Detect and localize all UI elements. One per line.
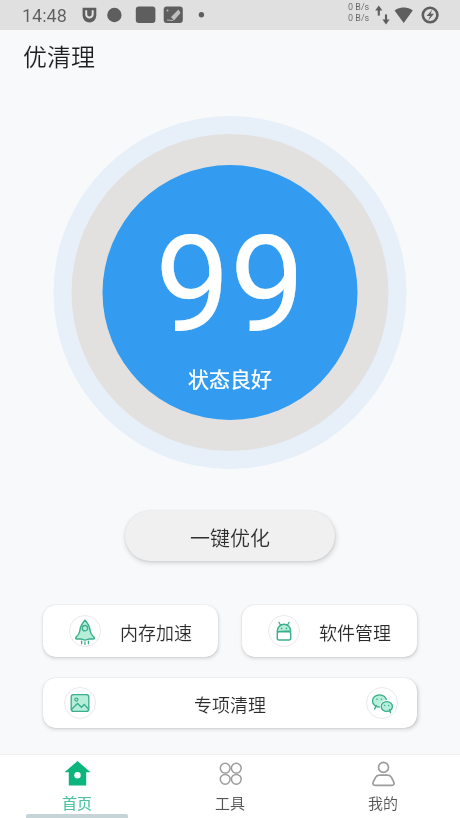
staticText: 工具 [215, 792, 246, 814]
staticText: 一键优化 [190, 523, 270, 552]
other: 图片清理 [64, 687, 96, 719]
staticText: 0 B/s [348, 13, 370, 24]
staticText: 14:48 [22, 5, 67, 26]
staticText: 99 [155, 208, 305, 343]
staticText: 软件管理 [319, 619, 391, 645]
other: 微信清理 [366, 687, 398, 719]
staticText: 内存加速 [120, 619, 192, 645]
staticText: 专项清理 [194, 691, 266, 717]
button[interactable]: 软件管理 [242, 605, 417, 657]
staticText: 我的 [368, 792, 399, 814]
button[interactable]: 我的 [307, 754, 460, 818]
staticText: 0 B/s [348, 2, 370, 13]
button[interactable]: 工具 [154, 754, 307, 818]
button[interactable]: 图片清理 [43, 678, 417, 728]
button[interactable]: 一键优化 [125, 511, 335, 561]
staticText: 优清理 [23, 38, 95, 73]
button[interactable]: 内存加速 [43, 605, 218, 657]
button[interactable]: 首页 [0, 754, 154, 818]
staticText: 状态良好 [188, 363, 272, 393]
staticText: 首页 [62, 792, 93, 814]
